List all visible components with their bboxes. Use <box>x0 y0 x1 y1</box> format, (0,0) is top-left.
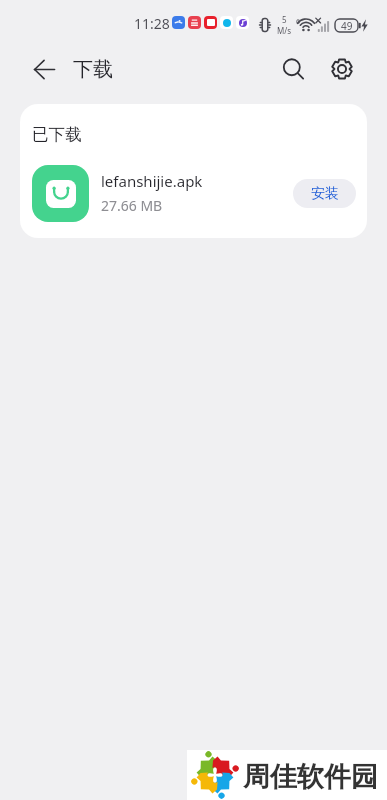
staticText: 已下载 <box>32 124 82 145</box>
staticText: 下载 <box>73 57 113 82</box>
staticText: 49 <box>341 19 353 32</box>
button[interactable]: lefanshijie.apk <box>32 165 356 222</box>
staticText: 11:28 <box>134 14 170 33</box>
button[interactable]: Settings <box>318 45 366 93</box>
staticText: lefanshijie.apk <box>101 171 203 191</box>
staticText: 6 <box>296 17 301 27</box>
staticText: M/s <box>277 25 292 36</box>
staticText: 5 <box>282 14 287 25</box>
button[interactable]: 安装 <box>293 179 356 208</box>
staticText: 27.66 MB <box>101 196 163 215</box>
staticText: 安装 <box>311 185 339 203</box>
button[interactable]: Search <box>270 45 318 93</box>
staticText: 周佳软件园 <box>243 760 378 794</box>
button[interactable]: Back <box>20 45 68 93</box>
